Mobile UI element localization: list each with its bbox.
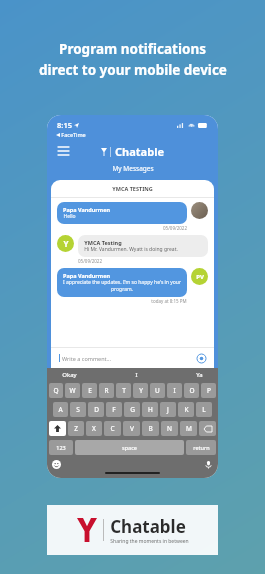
staticText: Z: [74, 424, 78, 433]
staticText: D: [94, 405, 99, 414]
button[interactable]: I: [130, 371, 143, 379]
staticText: X: [92, 424, 96, 433]
staticText: 05/09/2022: [78, 258, 102, 264]
staticText: return: [193, 444, 210, 451]
button[interactable]: Y: [57, 235, 74, 252]
button[interactable]: R: [99, 383, 114, 398]
button[interactable]: Q: [49, 383, 63, 398]
button[interactable]: U: [150, 383, 165, 398]
button[interactable]: G: [124, 402, 140, 417]
staticText: B: [148, 424, 153, 433]
button[interactable]: E: [82, 383, 97, 398]
staticText: Papa Vandurmen: [63, 272, 110, 279]
staticText: Ya: [196, 371, 203, 379]
button[interactable]: F: [106, 402, 122, 417]
button[interactable]: S: [70, 402, 86, 417]
button[interactable]: P: [201, 383, 216, 398]
staticText: O: [189, 386, 195, 395]
staticText: FaceTime: [61, 131, 86, 138]
staticText: I appreciate the updates. I'm so happy h…: [63, 279, 181, 293]
staticText: M: [186, 424, 192, 433]
button[interactable]: Papa Vandurmen: [57, 202, 187, 224]
button[interactable]: Ya: [191, 371, 208, 379]
button[interactable]: Okay: [57, 371, 82, 379]
staticText: space: [122, 444, 137, 451]
staticText: I: [173, 386, 176, 395]
staticText: V: [130, 424, 134, 433]
button[interactable]: O: [184, 383, 199, 398]
button[interactable]: X: [86, 421, 102, 436]
staticText: P: [207, 386, 211, 395]
staticText: Q: [53, 386, 59, 395]
staticText: W: [69, 386, 76, 395]
button[interactable]: T: [116, 383, 131, 398]
staticText: A: [58, 405, 63, 414]
staticText: YMCA TESTING: [112, 185, 153, 192]
staticText: F: [112, 405, 116, 414]
button[interactable]: N: [161, 421, 178, 436]
button[interactable]: J: [160, 402, 176, 417]
staticText: today at 8:15 PM: [151, 298, 187, 304]
button[interactable]: return: [186, 440, 216, 455]
staticText: Sharing the moments in between: [110, 538, 189, 545]
button[interactable]: PV: [191, 268, 208, 285]
button[interactable]: L: [196, 402, 212, 417]
staticText: R: [104, 386, 109, 395]
staticText: 123: [56, 444, 66, 451]
staticText: J: [167, 405, 169, 414]
staticText: S: [76, 405, 80, 414]
staticText: E: [88, 386, 92, 395]
button[interactable]: space: [75, 440, 184, 455]
button[interactable]: Shift: [49, 421, 66, 436]
button[interactable]: Z: [68, 421, 84, 436]
staticText: Hi Mr. Vandurmen. Wyatt is doing great.: [84, 246, 178, 253]
button[interactable]: Backspace: [199, 421, 216, 436]
button[interactable]: M: [180, 421, 197, 436]
staticText: 8:15: [57, 120, 72, 130]
button[interactable]: D: [88, 402, 104, 417]
staticText: Chatable: [115, 144, 164, 159]
staticText: I: [135, 371, 138, 379]
staticText: Write a comment...: [62, 355, 111, 362]
staticText: U: [155, 386, 160, 395]
staticText: G: [130, 405, 135, 414]
button[interactable]: K: [178, 402, 194, 417]
staticText: Program notifications: [59, 40, 206, 58]
staticText: Hello: [63, 213, 76, 220]
button[interactable]: Y: [133, 383, 148, 398]
staticText: N: [167, 424, 172, 433]
staticText: 05/09/2022: [163, 225, 187, 231]
button[interactable]: 123: [49, 440, 73, 455]
button[interactable]: YMCA Testing: [78, 235, 208, 257]
staticText: H: [148, 405, 153, 414]
staticText: C: [110, 424, 115, 433]
button[interactable]: I: [167, 383, 182, 398]
staticText: L: [202, 405, 206, 414]
staticText: Okay: [62, 371, 77, 379]
staticText: T: [122, 386, 126, 395]
button[interactable]: Send: [197, 354, 206, 363]
staticText: My Messages: [112, 164, 154, 173]
staticText: direct to your mobile device: [39, 61, 227, 79]
button[interactable]: Avatar: [191, 202, 208, 219]
staticText: Y: [139, 386, 143, 395]
staticText: YMCA Testing: [84, 239, 122, 246]
button[interactable]: Write a comment...: [51, 348, 214, 368]
button[interactable]: C: [104, 421, 121, 436]
button[interactable]: Dictate: [204, 460, 213, 469]
staticText: PV: [196, 273, 204, 281]
button[interactable]: B: [142, 421, 159, 436]
button[interactable]: A: [53, 402, 68, 417]
button[interactable]: Menu: [55, 143, 71, 159]
staticText: K: [184, 405, 189, 414]
button[interactable]: V: [123, 421, 140, 436]
staticText: Papa Vandurmen: [63, 206, 110, 213]
button[interactable]: Emoji: [52, 460, 61, 469]
staticText: Y: [63, 238, 69, 249]
button[interactable]: W: [65, 383, 80, 398]
button[interactable]: H: [142, 402, 158, 417]
staticText: Chatable: [110, 515, 186, 538]
button[interactable]: Papa Vandurmen: [57, 268, 187, 297]
